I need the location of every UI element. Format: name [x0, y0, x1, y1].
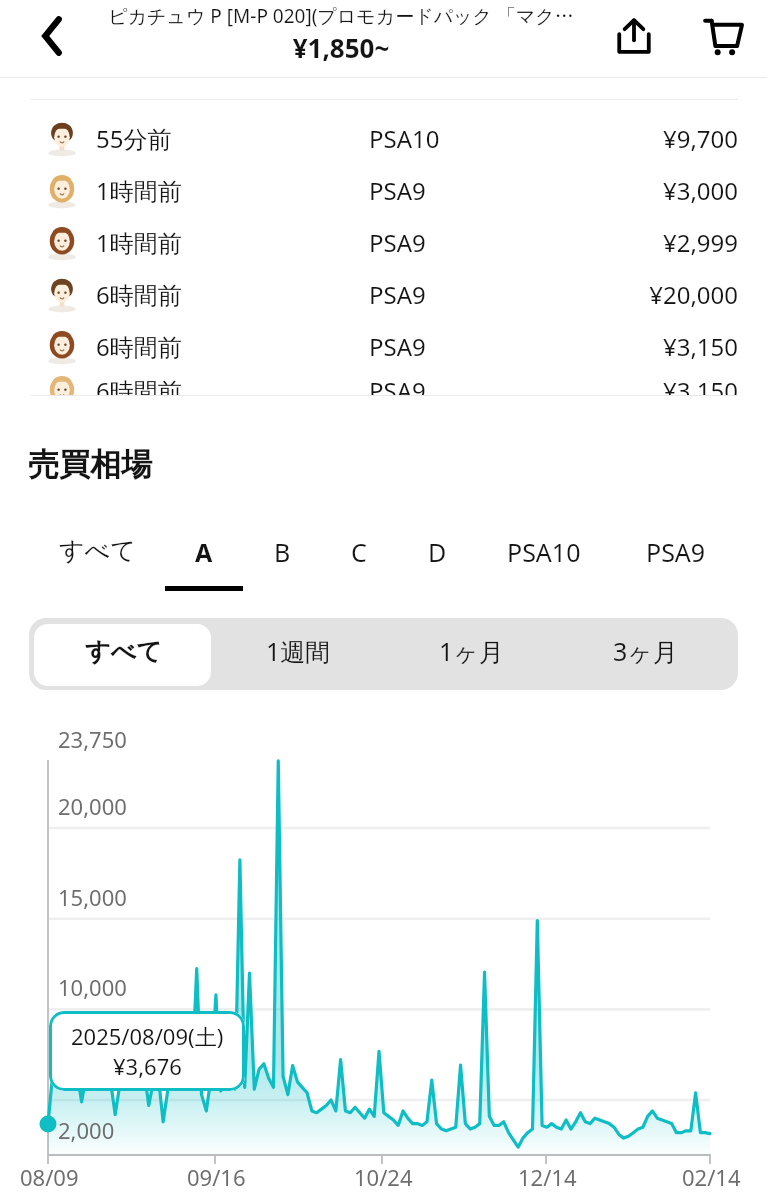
staticText: 6時間前 [96, 278, 182, 311]
staticText: 08/09 [20, 1162, 79, 1192]
staticText: 15,000 [58, 882, 127, 912]
button[interactable]: 6時間前 [0, 372, 767, 396]
button[interactable]: 1時間前 [0, 164, 767, 216]
staticText: 55分前 [96, 122, 172, 155]
staticText: PSA9 [369, 226, 426, 259]
button[interactable]: D [383, 516, 491, 591]
staticText: すべて [85, 636, 162, 667]
staticText: 6時間前 [96, 330, 182, 363]
staticText: ¥9,700 [438, 122, 738, 155]
staticText: 1時間前 [96, 174, 182, 207]
staticText: 20,000 [58, 791, 127, 821]
staticText: ¥2,999 [438, 226, 738, 259]
button[interactable]: Back [17, 1, 87, 71]
staticText: 10/24 [354, 1162, 413, 1192]
button[interactable]: 1週間 [212, 618, 384, 684]
staticText: 10,000 [58, 972, 127, 1002]
staticText: PSA10 [507, 535, 581, 569]
staticText: PSA10 [369, 122, 440, 155]
button[interactable]: A [150, 516, 258, 591]
staticText: ¥3,150 [438, 330, 738, 363]
staticText: PSA9 [369, 374, 426, 396]
staticText: 3ヶ月 [613, 634, 678, 668]
staticText: PSA9 [646, 535, 706, 569]
button[interactable]: C [305, 516, 413, 591]
staticText: すべて [59, 535, 136, 566]
staticText: ¥20,000 [438, 278, 738, 311]
staticText: 売買相場 [28, 445, 152, 484]
button[interactable]: 3ヶ月 [559, 618, 731, 684]
staticText: A [195, 535, 213, 569]
staticText: PSA9 [369, 330, 426, 363]
staticText: 02/14 [682, 1162, 741, 1192]
staticText: 1週間 [266, 634, 331, 668]
staticText: 2025/08/09(土) [71, 1021, 224, 1051]
button[interactable]: すべて [43, 516, 151, 591]
staticText: 6時間前 [96, 374, 182, 396]
button[interactable]: 6時間前 [0, 320, 767, 372]
staticText: 09/16 [187, 1162, 246, 1192]
staticText: ¥3,676 [113, 1051, 182, 1081]
button[interactable]: 6時間前 [0, 268, 767, 320]
button[interactable]: B [228, 516, 336, 591]
staticText: C [351, 535, 367, 569]
button[interactable]: Share [601, 3, 667, 69]
staticText: ¥3,150 [438, 374, 738, 396]
button[interactable]: Cart [690, 4, 756, 70]
staticText: 1時間前 [96, 226, 182, 259]
staticText: ¥1,850~ [101, 30, 581, 65]
staticText: PSA9 [369, 174, 426, 207]
staticText: B [274, 535, 291, 569]
staticText: D [428, 535, 447, 569]
staticText: 1ヶ月 [439, 634, 504, 668]
button[interactable]: すべて [37, 618, 209, 684]
staticText: ¥3,000 [438, 174, 738, 207]
button[interactable]: 1ヶ月 [385, 618, 557, 684]
staticText: 12/14 [518, 1162, 577, 1192]
button[interactable]: PSA10 [490, 516, 598, 591]
staticText: ピカチュウ P [M-P 020](プロモカードパック 「マクドナ… [101, 3, 581, 29]
staticText: 23,750 [58, 724, 127, 754]
staticText: PSA9 [369, 278, 426, 311]
button[interactable]: 55分前 [0, 112, 767, 164]
button[interactable]: PSA9 [622, 516, 730, 591]
staticText: 2,000 [58, 1115, 115, 1145]
button[interactable]: 1時間前 [0, 216, 767, 268]
